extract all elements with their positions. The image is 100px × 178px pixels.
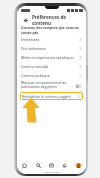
staticText: Métier et expressions spécifiques [21,55,79,60]
staticText: Contenu sensible [21,64,79,69]
staticText: Peu intéressant [21,46,79,51]
button[interactable]: Métier et expressions spécifiques [17,53,86,62]
staticText: Intéressant [21,37,79,42]
staticText: Contenu des comptes que vous ne suivez p… [21,25,82,35]
staticText: Contenu politique [21,73,79,78]
button[interactable]: Peu intéressant [17,44,86,53]
staticText: Réinitialiser le contenu suggéré [22,94,78,98]
button[interactable]: Réinitialiser le contenu suggéré [20,92,83,100]
button[interactable]: Contenu sensible [17,62,86,71]
button[interactable]: Intéressant [17,35,86,44]
button[interactable]: Communities [46,160,57,171]
button[interactable]: Profile [73,160,84,171]
button[interactable]: Contenu politique [17,71,86,80]
button[interactable]: Back [21,16,29,24]
staticText: Préférences de contenu [32,14,82,25]
button[interactable]: Masquer temporairement les publications … [17,80,86,91]
button[interactable]: Search [33,160,44,171]
staticText: Masquer temporairement les publications … [21,80,73,88]
button[interactable]: Notifications [59,160,70,171]
button[interactable]: Home [19,160,30,171]
button[interactable]: Toggle [75,84,82,88]
